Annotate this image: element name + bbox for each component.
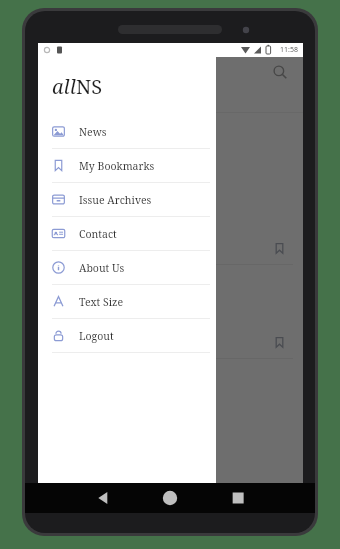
staticText: ith two St.: [46, 285, 86, 297]
staticText: Logout: [79, 329, 114, 343]
button[interactable]: News: [38, 115, 216, 148]
staticText: Text Size: [79, 295, 124, 309]
button[interactable]: Issue Archives: [38, 183, 216, 216]
button[interactable]: Bookmark: [271, 334, 287, 350]
staticText: About Us: [79, 261, 125, 275]
button[interactable]: Contact: [38, 217, 216, 250]
button[interactable]: Search: [269, 61, 291, 83]
staticText: NS: [76, 73, 103, 100]
button[interactable]: Bookmark: [271, 240, 287, 256]
staticText: all: [52, 73, 76, 100]
staticText: ation at IMV: [46, 206, 95, 218]
button[interactable]: Logout: [38, 319, 216, 352]
button[interactable]: Text Size: [38, 285, 216, 318]
staticText: 11:58: [280, 45, 298, 55]
staticText: his salary,: [46, 191, 86, 203]
staticText: ster through: [46, 315, 97, 327]
staticText: My Bookmarks: [79, 159, 155, 173]
staticText: paratively low.: [46, 221, 104, 233]
staticText: Issue Archives: [79, 193, 152, 207]
staticText: in the hope: [46, 300, 92, 312]
staticText: Contact: [79, 227, 117, 241]
button[interactable]: About Us: [38, 251, 216, 284]
staticText: News: [79, 125, 107, 139]
button[interactable]: My Bookmarks: [38, 149, 216, 182]
